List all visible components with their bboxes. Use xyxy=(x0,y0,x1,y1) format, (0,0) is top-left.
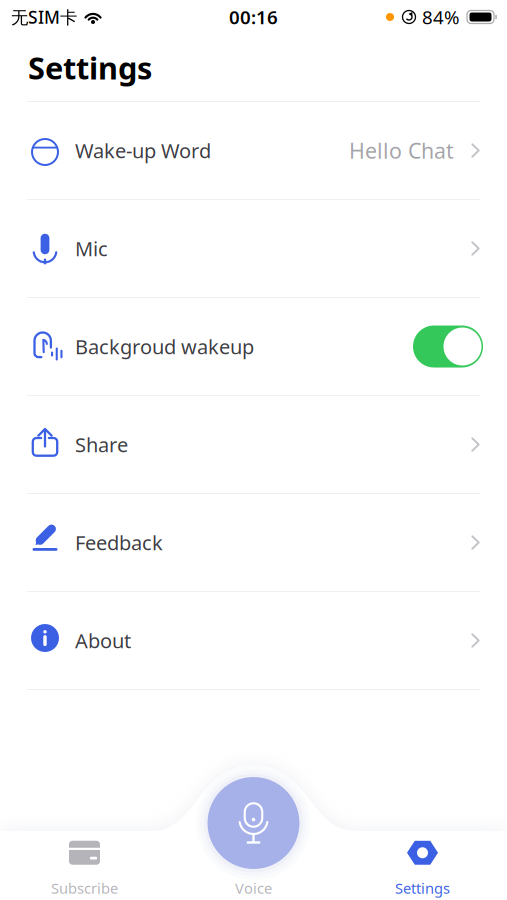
staticText: Backgroud wakeup xyxy=(75,333,254,360)
staticText: Settings xyxy=(28,47,152,88)
staticText: Subscribe xyxy=(51,878,118,898)
button[interactable]: Wake-up Word xyxy=(0,102,507,199)
staticText: Share xyxy=(75,431,128,458)
staticText: Mic xyxy=(75,235,108,262)
staticText: Hello Chat xyxy=(349,136,454,165)
button[interactable]: About xyxy=(0,592,507,689)
button[interactable]: Voice xyxy=(169,831,338,900)
staticText: Settings xyxy=(395,878,450,898)
staticText: Feedback xyxy=(75,529,163,556)
staticText: 00:16 xyxy=(229,5,278,29)
staticText: Wake-up Word xyxy=(75,137,211,164)
staticText: Voice xyxy=(235,878,272,898)
button[interactable]: Mic xyxy=(0,200,507,297)
button[interactable]: Subscribe xyxy=(0,831,169,900)
button[interactable]: Feedback xyxy=(0,494,507,591)
button[interactable]: Backgroud wakeup xyxy=(413,325,483,367)
staticText: About xyxy=(75,627,131,654)
button[interactable]: Voice xyxy=(196,766,310,880)
button[interactable]: Share xyxy=(0,396,507,493)
staticText: 84% xyxy=(422,5,460,29)
staticText: 无SIM卡 xyxy=(11,5,77,28)
button[interactable]: Settings xyxy=(338,831,507,900)
button[interactable]: Backgroud wakeup xyxy=(0,298,507,395)
